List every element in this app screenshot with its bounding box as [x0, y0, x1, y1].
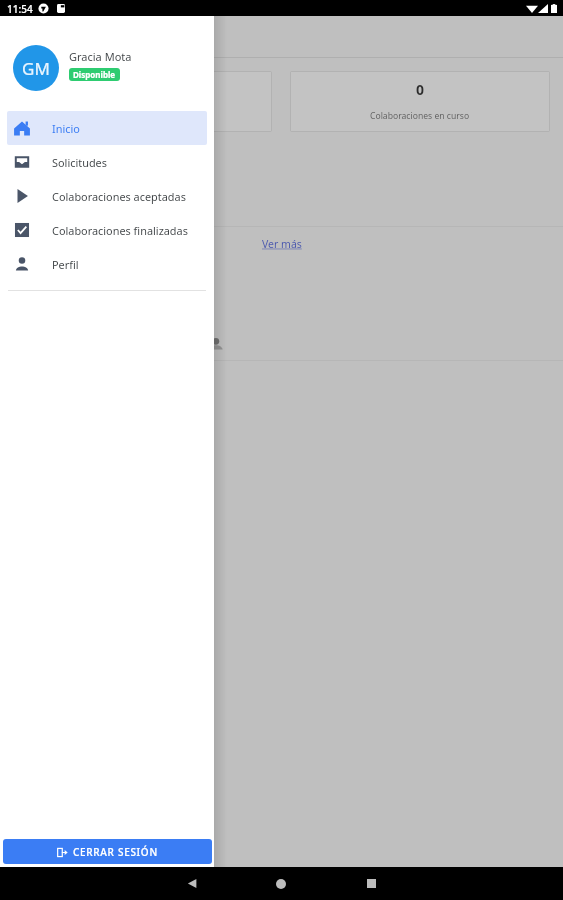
staticText: Inicio: [52, 121, 80, 136]
button[interactable]: Back: [174, 867, 210, 900]
button[interactable]: Home: [263, 867, 299, 900]
button[interactable]: Colaboraciones finalizadas: [7, 213, 207, 247]
button[interactable]: Recent apps: [353, 867, 389, 900]
button[interactable]: Inicio: [7, 111, 207, 145]
staticText: Colaboraciones aceptadas: [52, 189, 186, 204]
button[interactable]: CERRAR SESIÓN: [3, 839, 212, 864]
staticText: CERRAR SESIÓN: [73, 845, 158, 859]
staticText: Disponible: [73, 69, 116, 80]
staticText: Ver más: [262, 237, 302, 251]
button[interactable]: Profile: Gracia Mota, Disponible: [0, 16, 214, 111]
staticText: Gracia Mota: [69, 49, 132, 64]
staticText: Perfil: [52, 257, 79, 272]
button[interactable]: Perfil: [7, 247, 207, 281]
staticText: GM: [22, 57, 50, 80]
staticText: Solicitudes: [52, 155, 107, 170]
staticText: Colaboraciones finalizadas: [52, 223, 188, 238]
button[interactable]: Colaboraciones aceptadas: [7, 179, 207, 213]
button[interactable]: Solicitudes: [7, 145, 207, 179]
staticText: 0: [416, 80, 425, 99]
staticText: Colaboraciones en curso: [370, 110, 470, 122]
staticText: 11:54: [7, 2, 33, 16]
